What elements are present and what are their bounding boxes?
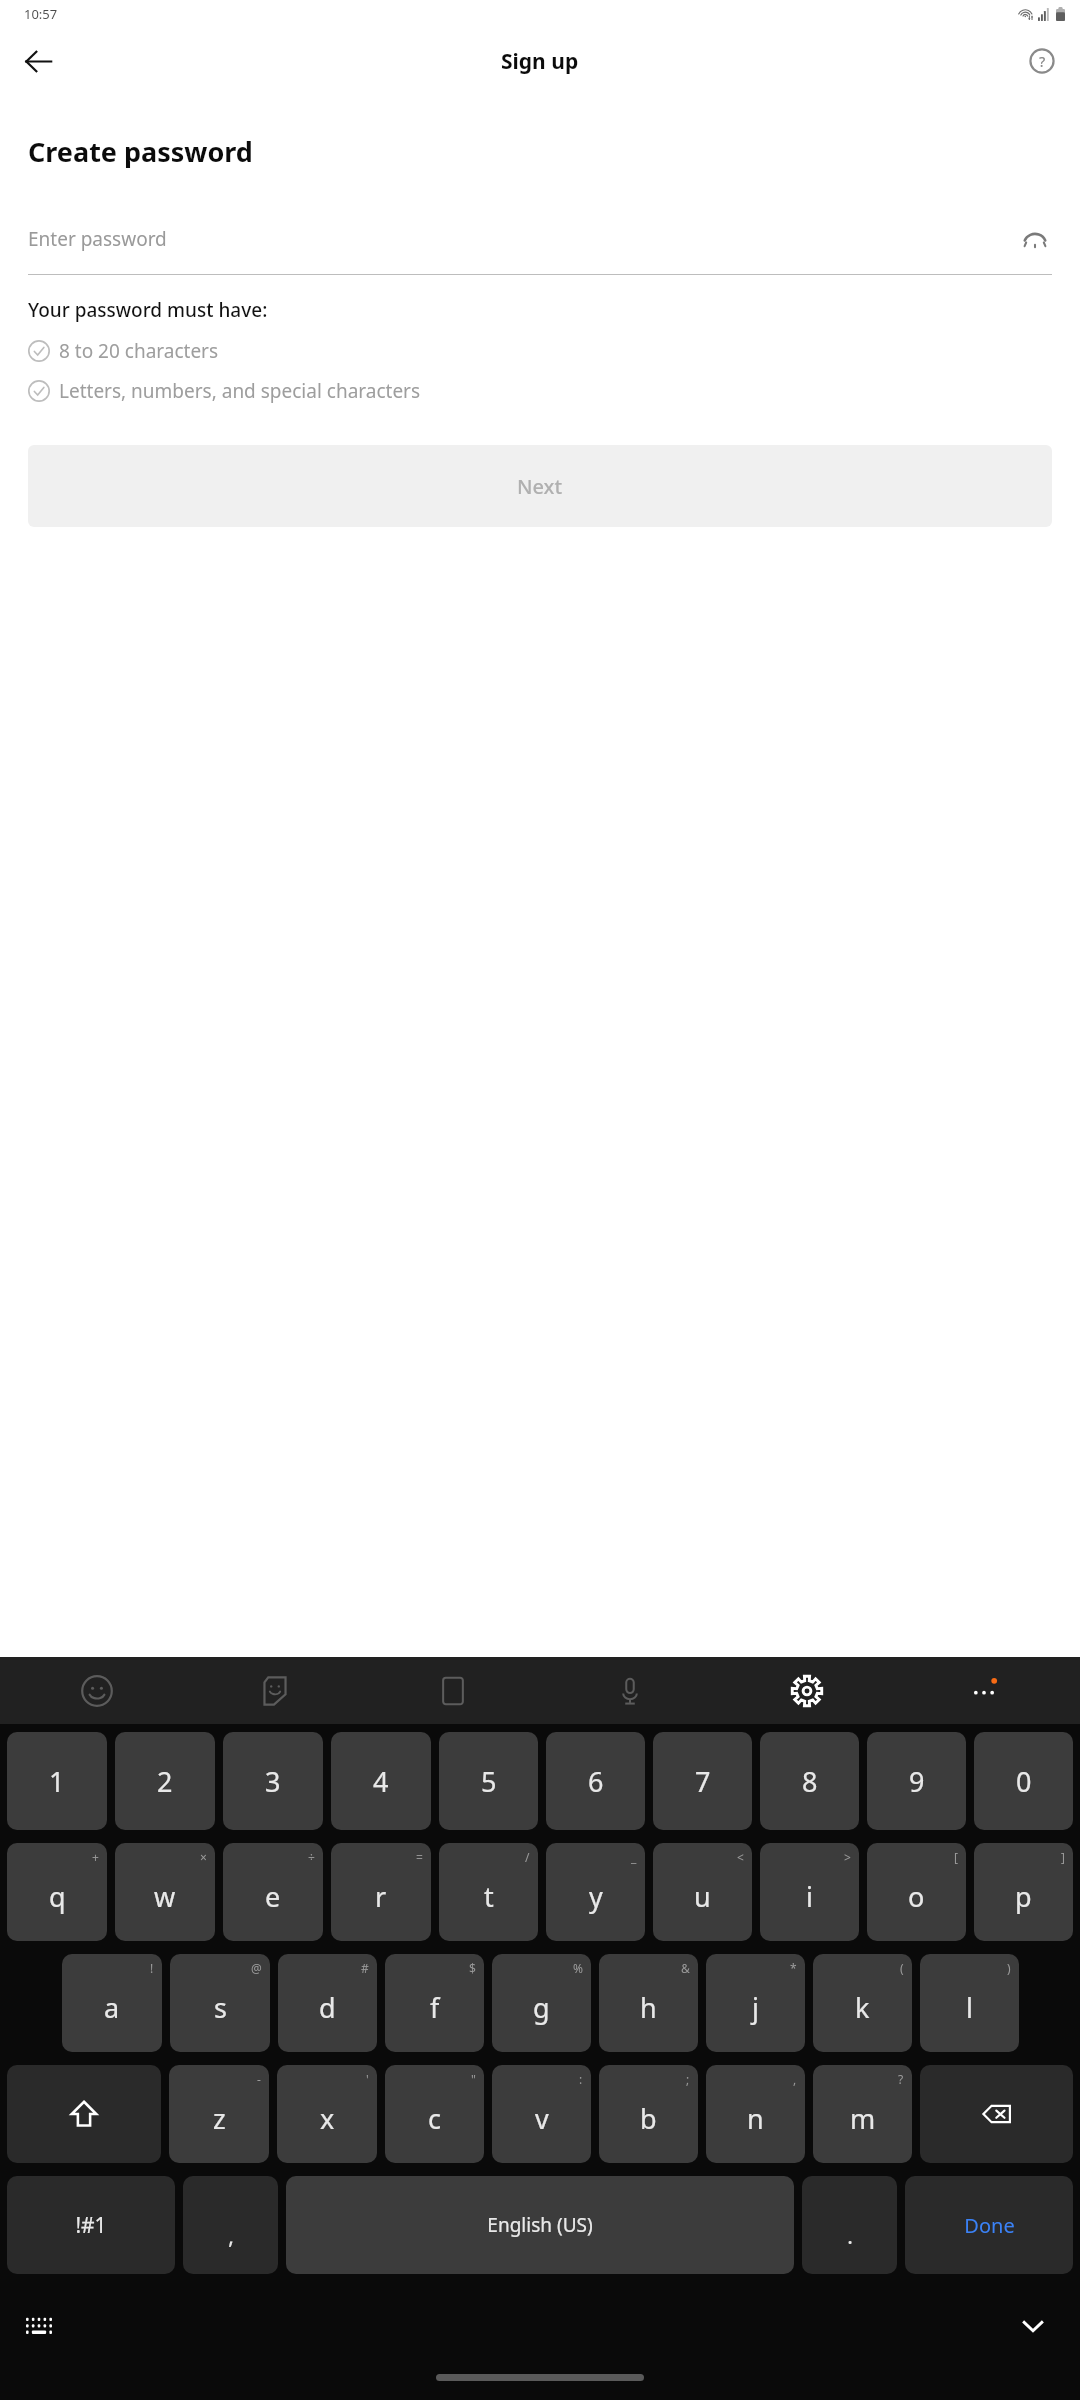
- staticText: 0: [1016, 1763, 1032, 1800]
- button[interactable]: 7: [653, 1732, 752, 1830]
- button[interactable]: Done: [905, 2176, 1073, 2274]
- button[interactable]: 5: [439, 1732, 538, 1830]
- button[interactable]: ,: [183, 2176, 278, 2274]
- staticText: e: [265, 1878, 281, 1915]
- staticText: o: [908, 1878, 925, 1915]
- button[interactable]: Settings: [718, 1657, 895, 1724]
- staticText: ": [471, 2071, 476, 2087]
- staticText: Sign up: [501, 47, 579, 76]
- staticText: Next: [517, 473, 563, 500]
- staticText: ?: [898, 2071, 904, 2087]
- button[interactable]: %: [492, 1954, 591, 2052]
- staticText: Done: [964, 2212, 1015, 2239]
- button[interactable]: ": [385, 2065, 484, 2163]
- button[interactable]: ]: [974, 1843, 1073, 1941]
- staticText: 8: [802, 1763, 818, 1800]
- staticText: j: [752, 1989, 759, 2026]
- button[interactable]: 9: [867, 1732, 966, 1830]
- button[interactable]: -: [169, 2065, 269, 2163]
- staticText: English (US): [487, 2212, 593, 2238]
- button[interactable]: Change keyboard: [16, 2302, 62, 2348]
- button[interactable]: GIF: [364, 1657, 541, 1724]
- button[interactable]: Help: [1016, 35, 1068, 87]
- button[interactable]: ÷: [223, 1843, 323, 1941]
- button[interactable]: [: [867, 1843, 966, 1941]
- button[interactable]: ': [277, 2065, 377, 2163]
- button[interactable]: *: [706, 1954, 805, 2052]
- button[interactable]: ,: [706, 2065, 805, 2163]
- staticText: <: [737, 1849, 744, 1865]
- button[interactable]: !: [62, 1954, 162, 2052]
- button[interactable]: 0: [974, 1732, 1073, 1830]
- button[interactable]: /: [439, 1843, 538, 1941]
- staticText: Enter password: [28, 226, 1018, 252]
- button[interactable]: !#1: [7, 2176, 175, 2274]
- button[interactable]: (: [813, 1954, 912, 2052]
- button[interactable]: Enter password: [28, 216, 1052, 262]
- staticText: (: [900, 1960, 904, 1976]
- staticText: 3: [265, 1763, 281, 1800]
- staticText: p: [1015, 1878, 1032, 1915]
- staticText: %: [573, 1960, 583, 1976]
- staticText: b: [640, 2100, 657, 2137]
- staticText: l: [966, 1989, 973, 2026]
- staticText: -: [257, 2071, 261, 2087]
- staticText: 1: [49, 1763, 65, 1800]
- staticText: ]: [1061, 1849, 1065, 1865]
- staticText: Letters, numbers, and special characters: [59, 378, 421, 404]
- button[interactable]: 6: [546, 1732, 645, 1830]
- button[interactable]: ?: [813, 2065, 912, 2163]
- button[interactable]: Backspace: [920, 2065, 1073, 2163]
- button[interactable]: #: [278, 1954, 377, 2052]
- staticText: w: [154, 1878, 176, 1915]
- staticText: *: [790, 1960, 797, 1976]
- button[interactable]: Show password: [1018, 222, 1052, 256]
- staticText: z: [213, 2100, 226, 2137]
- staticText: y: [589, 1878, 603, 1915]
- button[interactable]: .: [802, 2176, 897, 2274]
- button[interactable]: _: [546, 1843, 645, 1941]
- staticText: q: [49, 1878, 66, 1915]
- button[interactable]: &: [599, 1954, 698, 2052]
- staticText: d: [319, 1989, 336, 2026]
- button[interactable]: =: [331, 1843, 431, 1941]
- button[interactable]: 8: [760, 1732, 859, 1830]
- staticText: 10:57: [24, 5, 58, 23]
- button[interactable]: More options: [895, 1657, 1072, 1724]
- staticText: k: [855, 1989, 870, 2026]
- staticText: v: [535, 2100, 549, 2137]
- staticText: 2: [157, 1763, 173, 1800]
- staticText: 6: [588, 1763, 604, 1800]
- button[interactable]: :: [492, 2065, 591, 2163]
- staticText: a: [104, 1989, 120, 2026]
- button[interactable]: >: [760, 1843, 859, 1941]
- button[interactable]: 3: [223, 1732, 323, 1830]
- button[interactable]: <: [653, 1843, 752, 1941]
- staticText: r: [375, 1878, 387, 1915]
- staticText: @: [251, 1960, 262, 1976]
- button[interactable]: $: [385, 1954, 484, 2052]
- button[interactable]: ×: [115, 1843, 215, 1941]
- button[interactable]: 2: [115, 1732, 215, 1830]
- button[interactable]: Emoji: [8, 1657, 186, 1724]
- staticText: Create password: [28, 133, 253, 170]
- staticText: t: [484, 1878, 494, 1915]
- button[interactable]: 1: [7, 1732, 107, 1830]
- staticText: ,: [793, 2071, 797, 2087]
- button[interactable]: Hide keyboard: [1010, 2302, 1056, 2348]
- staticText: m: [850, 2100, 876, 2137]
- button[interactable]: Voice input: [541, 1657, 718, 1724]
- button[interactable]: Shift: [7, 2065, 161, 2163]
- button[interactable]: Stickers: [186, 1657, 364, 1724]
- button[interactable]: Next: [28, 445, 1052, 527]
- button[interactable]: @: [170, 1954, 270, 2052]
- button[interactable]: 4: [331, 1732, 431, 1830]
- button[interactable]: ): [920, 1954, 1019, 2052]
- button[interactable]: ;: [599, 2065, 698, 2163]
- button[interactable]: Back: [10, 33, 66, 89]
- staticText: #: [361, 1960, 369, 1976]
- staticText: /: [525, 1849, 530, 1865]
- button[interactable]: English (US): [286, 2176, 794, 2274]
- staticText: 4: [373, 1763, 389, 1800]
- button[interactable]: +: [7, 1843, 107, 1941]
